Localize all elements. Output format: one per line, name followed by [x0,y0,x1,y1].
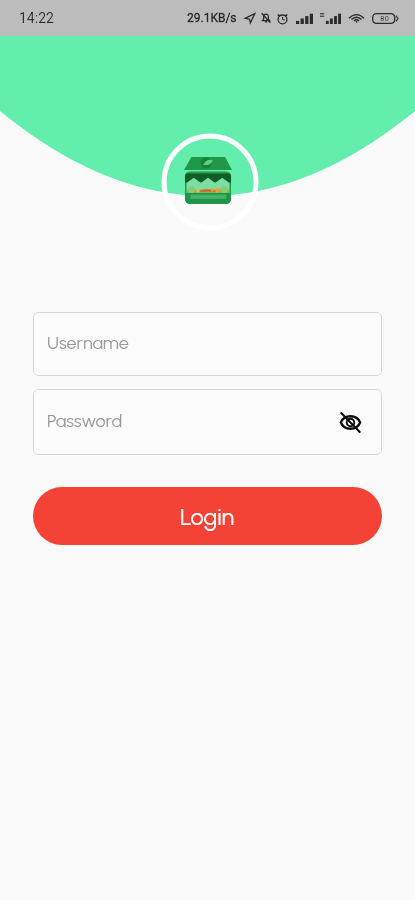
button[interactable]: Username [33,312,382,376]
staticText: Password [47,410,123,432]
staticText: 29.1KB/s [187,11,237,25]
button[interactable]: Login [33,487,382,545]
staticText: 80 [380,14,389,23]
staticText: Login [180,503,235,531]
staticText: 14:22 [19,10,54,26]
button[interactable]: Password [33,389,382,455]
button[interactable]: Toggle password visibility [335,407,365,437]
staticText: Username [47,332,129,354]
